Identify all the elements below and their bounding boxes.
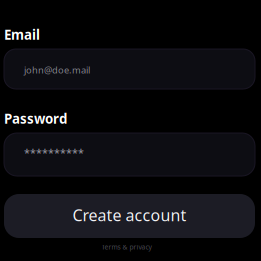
staticText: john@doe.mail: [24, 64, 90, 76]
button[interactable]: Password field: [4, 133, 255, 176]
staticText: Terms & privacy: [101, 243, 151, 251]
button[interactable]: Terms & privacy: [4, 245, 255, 255]
button[interactable]: Email address field: [4, 49, 255, 89]
staticText: Password: [4, 110, 67, 127]
staticText: Email: [4, 26, 40, 43]
staticText: Create account: [72, 204, 186, 226]
button[interactable]: Create account: [4, 194, 255, 238]
staticText: **********: [24, 145, 84, 160]
